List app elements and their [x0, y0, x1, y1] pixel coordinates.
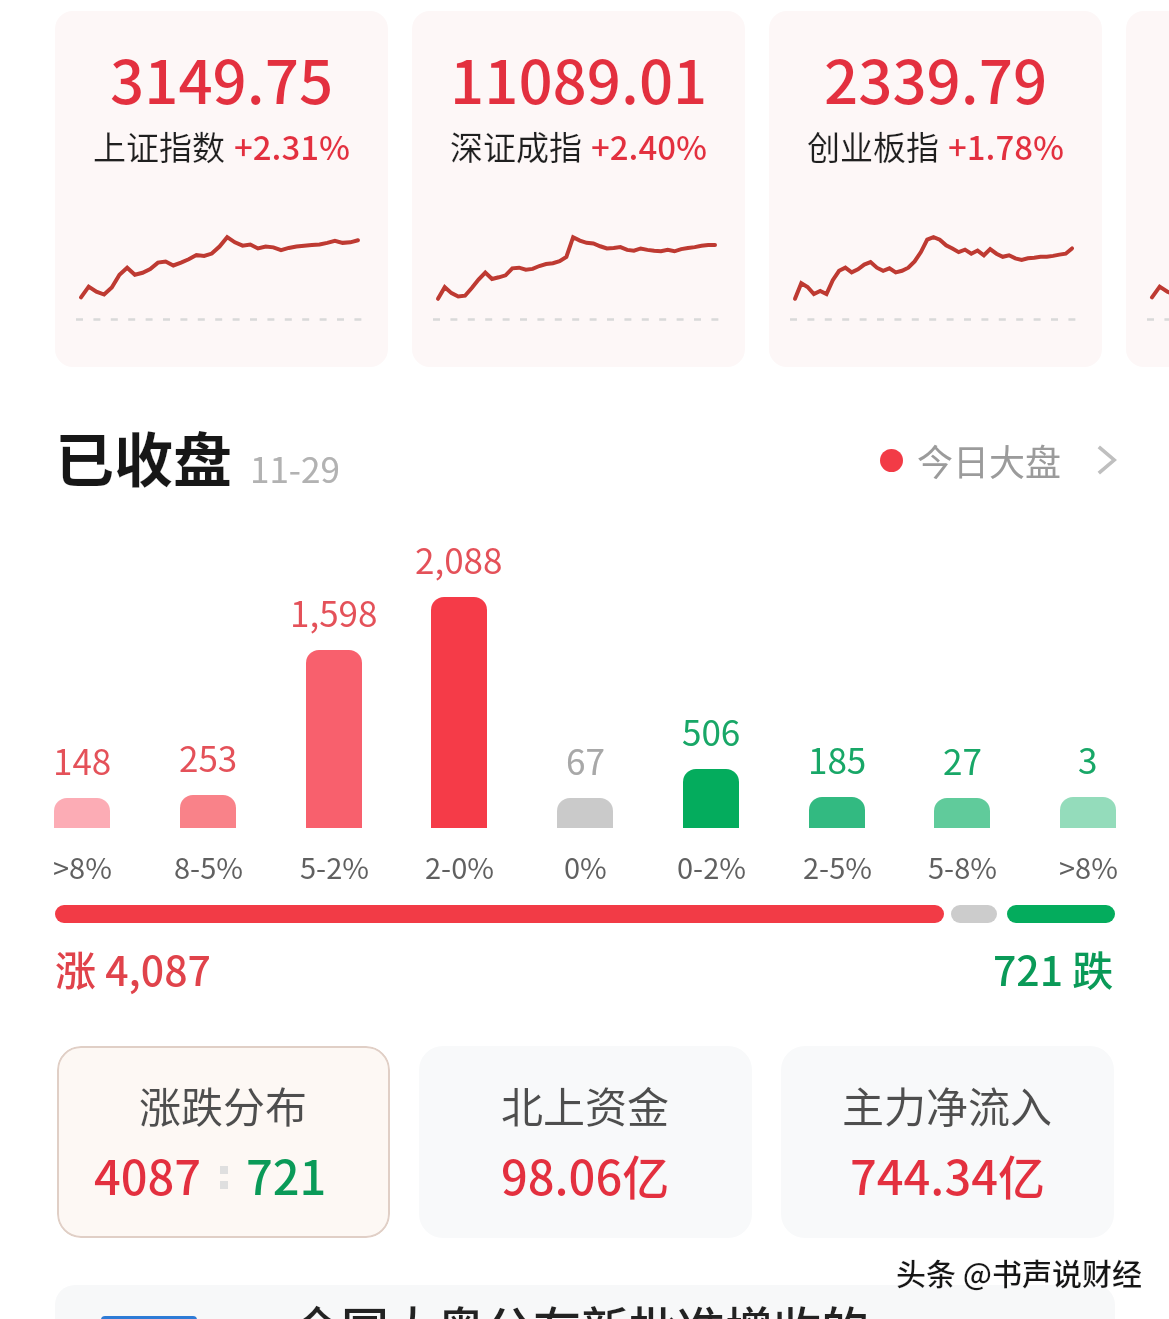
button[interactable]: 涨跌分布: [57, 1046, 390, 1238]
staticText: 506: [682, 705, 741, 756]
staticText: 已收盘: [55, 414, 233, 499]
button[interactable]: 2339.79: [769, 11, 1102, 367]
staticText: 8-5%: [174, 845, 243, 887]
button[interactable]: 3149.75: [55, 11, 388, 367]
staticText: 67: [566, 734, 605, 785]
button[interactable]: 主力净流入: [781, 1046, 1114, 1238]
staticText: 2-5%: [803, 845, 872, 887]
button[interactable]: 1234.56: [1126, 11, 1169, 367]
staticText: 721: [246, 1140, 327, 1208]
button[interactable]: 11089.01: [412, 11, 745, 367]
button[interactable]: 全国大奥公布新批准增收的: [55, 1285, 1115, 1319]
staticText: 27: [943, 734, 982, 785]
staticText: 深证成指: [450, 122, 582, 170]
staticText: 721 跌: [993, 938, 1114, 997]
staticText: 744.34亿: [850, 1140, 1045, 1208]
staticText: +2.40%: [591, 122, 708, 170]
staticText: 头条 @书声说财经: [896, 1250, 1142, 1293]
staticText: 2-0%: [425, 845, 494, 887]
staticText: 253: [179, 731, 238, 782]
staticText: 5-2%: [300, 845, 369, 887]
staticText: 北上资金: [501, 1074, 670, 1135]
staticText: 148: [53, 734, 112, 785]
staticText: 1,598: [290, 586, 378, 637]
button[interactable]: 北上资金: [419, 1046, 752, 1238]
staticText: >8%: [53, 845, 112, 887]
staticText: 全国大奥公布新批准增收的: [293, 1291, 870, 1319]
staticText: 2339.79: [824, 34, 1048, 121]
staticText: +1.78%: [948, 122, 1065, 170]
staticText: 创业板指: [807, 122, 939, 170]
staticText: 185: [808, 733, 867, 784]
staticText: 上证指数: [93, 122, 225, 170]
staticText: 98.06亿: [501, 1140, 670, 1208]
staticText: 2,088: [415, 533, 503, 584]
staticText: +2.31%: [234, 122, 351, 170]
staticText: 3149.75: [110, 34, 334, 121]
staticText: >8%: [1059, 845, 1118, 887]
staticText: 11-29: [250, 442, 340, 493]
staticText: 0%: [564, 845, 607, 887]
staticText: 主力净流入: [842, 1074, 1053, 1135]
staticText: 涨 4,087: [55, 938, 211, 997]
staticText: 5-8%: [928, 845, 997, 887]
staticText: 0-2%: [677, 845, 746, 887]
staticText: 4087: [94, 1140, 202, 1208]
button[interactable]: 今日大盘: [878, 426, 1148, 494]
staticText: 今日大盘: [917, 434, 1062, 486]
staticText: 11089.01: [450, 34, 708, 121]
staticText: 涨跌分布: [139, 1074, 308, 1135]
staticText: 3: [1078, 733, 1098, 784]
